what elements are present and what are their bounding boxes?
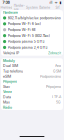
- staticText: Dual SIM: [3, 64, 18, 68]
- staticText: Ano: [55, 64, 61, 68]
- staticText: Síť: [56, 6, 60, 9]
- button[interactable]: Baterie: [38, 6, 51, 9]
- staticText: Rádio: [3, 105, 12, 109]
- staticText: LTE-A: [52, 95, 61, 99]
- button[interactable]: eSIM: [1, 74, 63, 79]
- staticText: Zobrazit: [48, 51, 61, 55]
- staticText: Podpora Wi-Fi 6E: [8, 28, 36, 32]
- staticText: Hardware: [3, 10, 18, 14]
- staticText: Moduly: [3, 59, 15, 63]
- button[interactable]: Max: [1, 100, 63, 105]
- staticText: 802.11 a/b/g/n/ac/ax podporováno: [8, 16, 61, 20]
- button[interactable]: Data: [1, 94, 63, 100]
- button[interactable]: Systém: [26, 6, 38, 9]
- staticText: Přehled: [0, 6, 12, 9]
- staticText: eSIM: [3, 74, 11, 79]
- staticText: 7:38: [2, 0, 9, 5]
- staticText: Baterie: [39, 6, 50, 9]
- button[interactable]: Podpora pásma 5 GHz: [1, 39, 63, 44]
- staticText: Verze: [3, 90, 12, 94]
- staticText: Podpora Wi-Fi 6 (ax): [8, 22, 41, 26]
- staticText: Podpora Wi-Fi 5 (802.11ac): [8, 34, 50, 38]
- staticText: Data: [3, 95, 11, 99]
- button[interactable]: Veřejná IP: [1, 50, 63, 56]
- button[interactable]: Stav: [1, 84, 63, 89]
- staticText: Připojeno: [46, 85, 61, 89]
- staticText: Systém: [26, 6, 38, 9]
- staticText: Připojení: [3, 80, 17, 84]
- button[interactable]: Typ telefonu: [1, 68, 63, 74]
- staticText: Typ telefonu: [3, 69, 23, 73]
- staticText: Podpora pásma 5 GHz: [8, 39, 45, 44]
- staticText: 5G: [56, 100, 61, 104]
- button[interactable]: Hardware: [13, 4, 26, 11]
- button[interactable]: Podpora Wi-Fi 6 (ax): [1, 21, 63, 27]
- staticText: Max: [3, 100, 10, 104]
- staticText: Podporováno: [40, 74, 61, 79]
- button[interactable]: Podpora pásma 2,4 GHz: [1, 44, 63, 50]
- staticText: Stav: [3, 85, 10, 89]
- button[interactable]: 802.11 a/b/g/n/ac/ax podporováno: [1, 15, 63, 21]
- staticText: ıll ᯤ ▮: [49, 0, 61, 5]
- staticText: Podpora pásma 2,4 GHz: [8, 45, 48, 50]
- staticText: Hardware: [14, 4, 25, 11]
- staticText: Veřejná IP: [3, 51, 19, 55]
- button[interactable]: Podpora Wi-Fi 6E: [1, 27, 63, 33]
- button[interactable]: Dual SIM: [1, 63, 63, 68]
- button[interactable]: Podpora Wi-Fi 5 (802.11ac): [1, 33, 63, 39]
- staticText: GSM: [53, 69, 61, 73]
- button[interactable]: Síť: [51, 6, 64, 9]
- button[interactable]: Přehled: [0, 6, 13, 9]
